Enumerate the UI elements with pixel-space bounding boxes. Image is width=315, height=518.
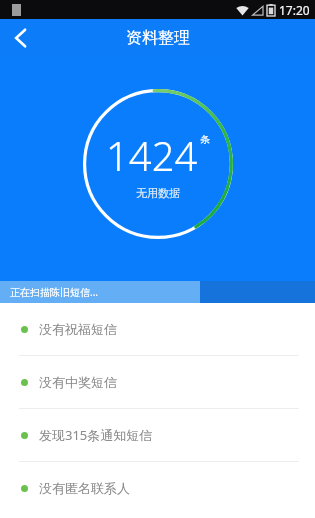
staticText: 1424 bbox=[106, 128, 198, 182]
staticText: 资料整理 bbox=[126, 28, 190, 48]
button[interactable]: 发现315条通知短信 bbox=[0, 409, 315, 461]
staticText: 没有祝福短信 bbox=[39, 321, 117, 337]
staticText: 条 bbox=[200, 133, 210, 146]
staticText: 没有匿名联系人 bbox=[39, 480, 130, 496]
button[interactable]: 没有祝福短信 bbox=[0, 303, 315, 355]
staticText: 17:20 bbox=[279, 2, 310, 18]
button[interactable]: Back bbox=[0, 19, 40, 57]
button[interactable]: 没有中奖短信 bbox=[0, 356, 315, 408]
staticText: 正在扫描陈旧短信... bbox=[10, 285, 99, 299]
staticText: 发现315条通知短信 bbox=[39, 426, 153, 444]
staticText: 无用数据 bbox=[136, 186, 180, 200]
staticText: 没有中奖短信 bbox=[39, 374, 117, 390]
button[interactable]: 没有匿名联系人 bbox=[0, 462, 315, 514]
